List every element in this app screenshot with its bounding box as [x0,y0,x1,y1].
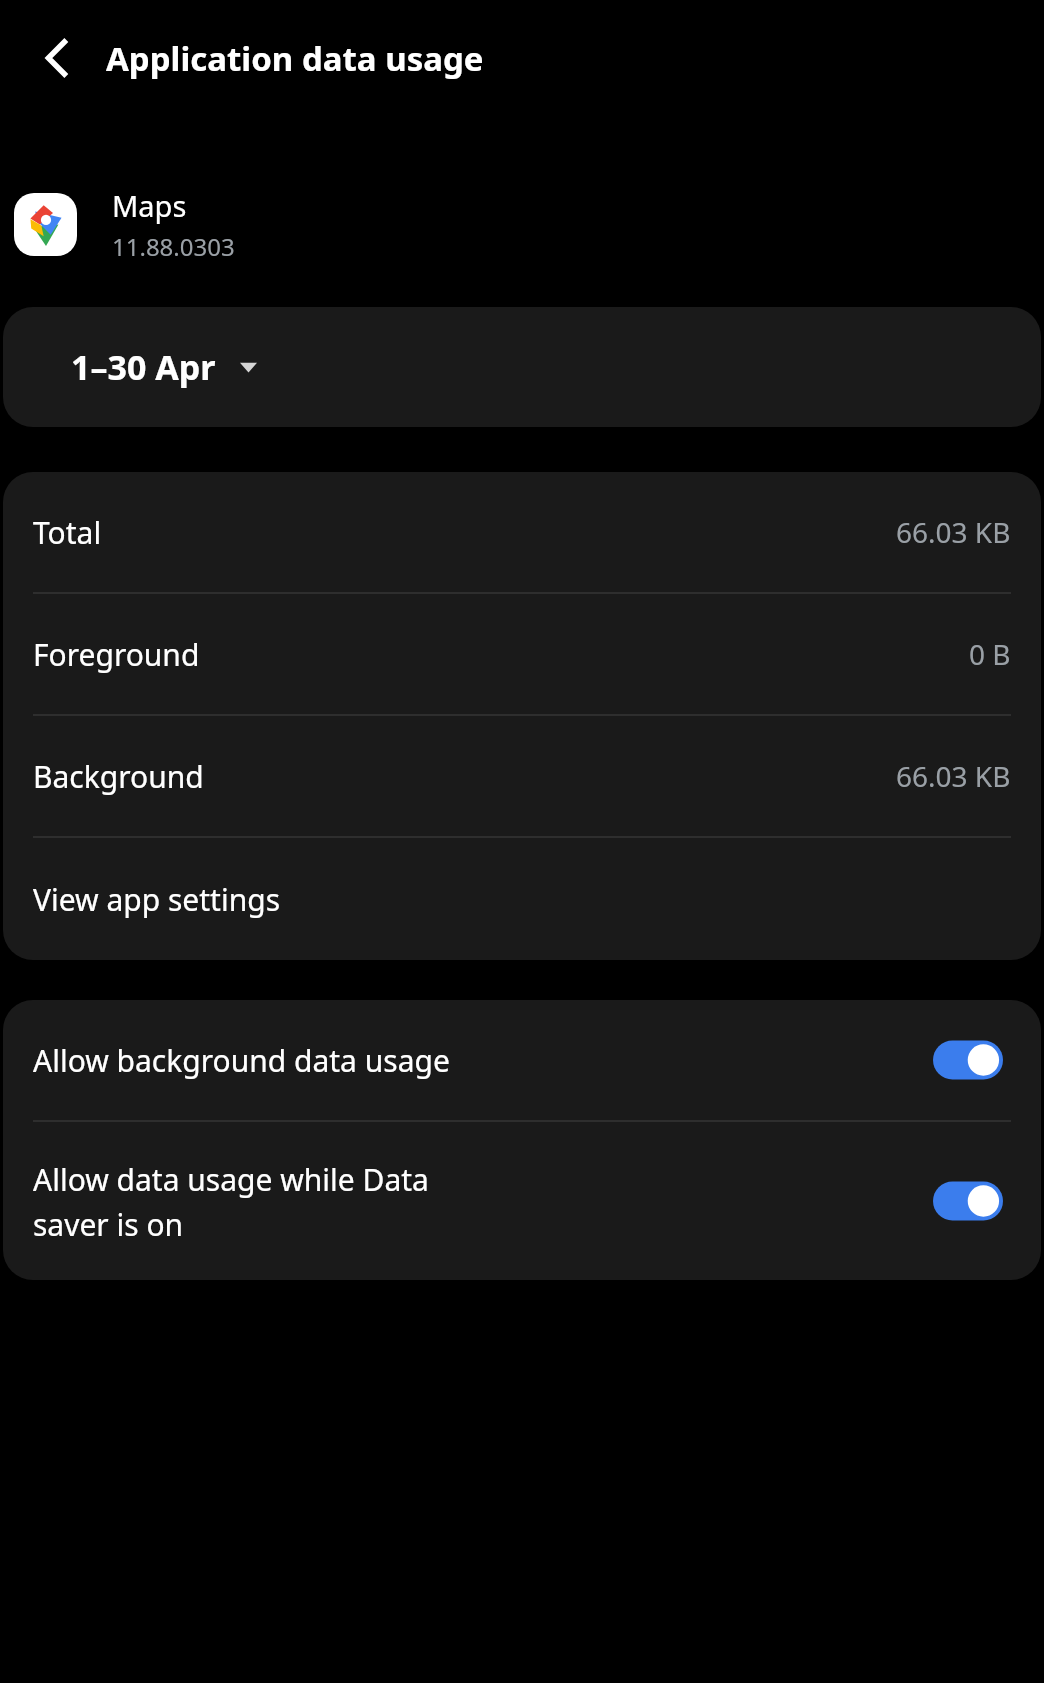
button[interactable]: View app settings [3,838,1041,960]
button[interactable]: Toggle on [933,1040,1003,1080]
button[interactable]: Total [3,472,1041,592]
staticText: Foreground [33,634,200,675]
staticText: 11.88.0303 [112,230,235,263]
staticText: 66.03 KB [896,513,1011,551]
button[interactable]: Background [3,716,1041,836]
staticText: Maps [112,186,187,225]
staticText: View app settings [33,879,281,920]
staticText: Total [33,512,102,553]
button[interactable]: Allow background data usage [3,1000,1041,1120]
button[interactable]: Foreground [3,594,1041,714]
staticText: Allow background data usage [33,1040,917,1081]
staticText: Allow data usage while Data saver is on [33,1159,917,1244]
button[interactable]: Back [22,22,94,94]
staticText: 66.03 KB [896,757,1011,795]
staticText: 1–30 Apr [71,344,216,390]
staticText: Application data usage [106,36,484,81]
button[interactable]: Toggle on [933,1181,1003,1221]
button[interactable]: Allow data usage while Data saver is on [3,1122,1041,1280]
staticText: Background [33,756,204,797]
button[interactable]: 1–30 Apr [3,307,1041,427]
staticText: 0 B [969,635,1011,673]
